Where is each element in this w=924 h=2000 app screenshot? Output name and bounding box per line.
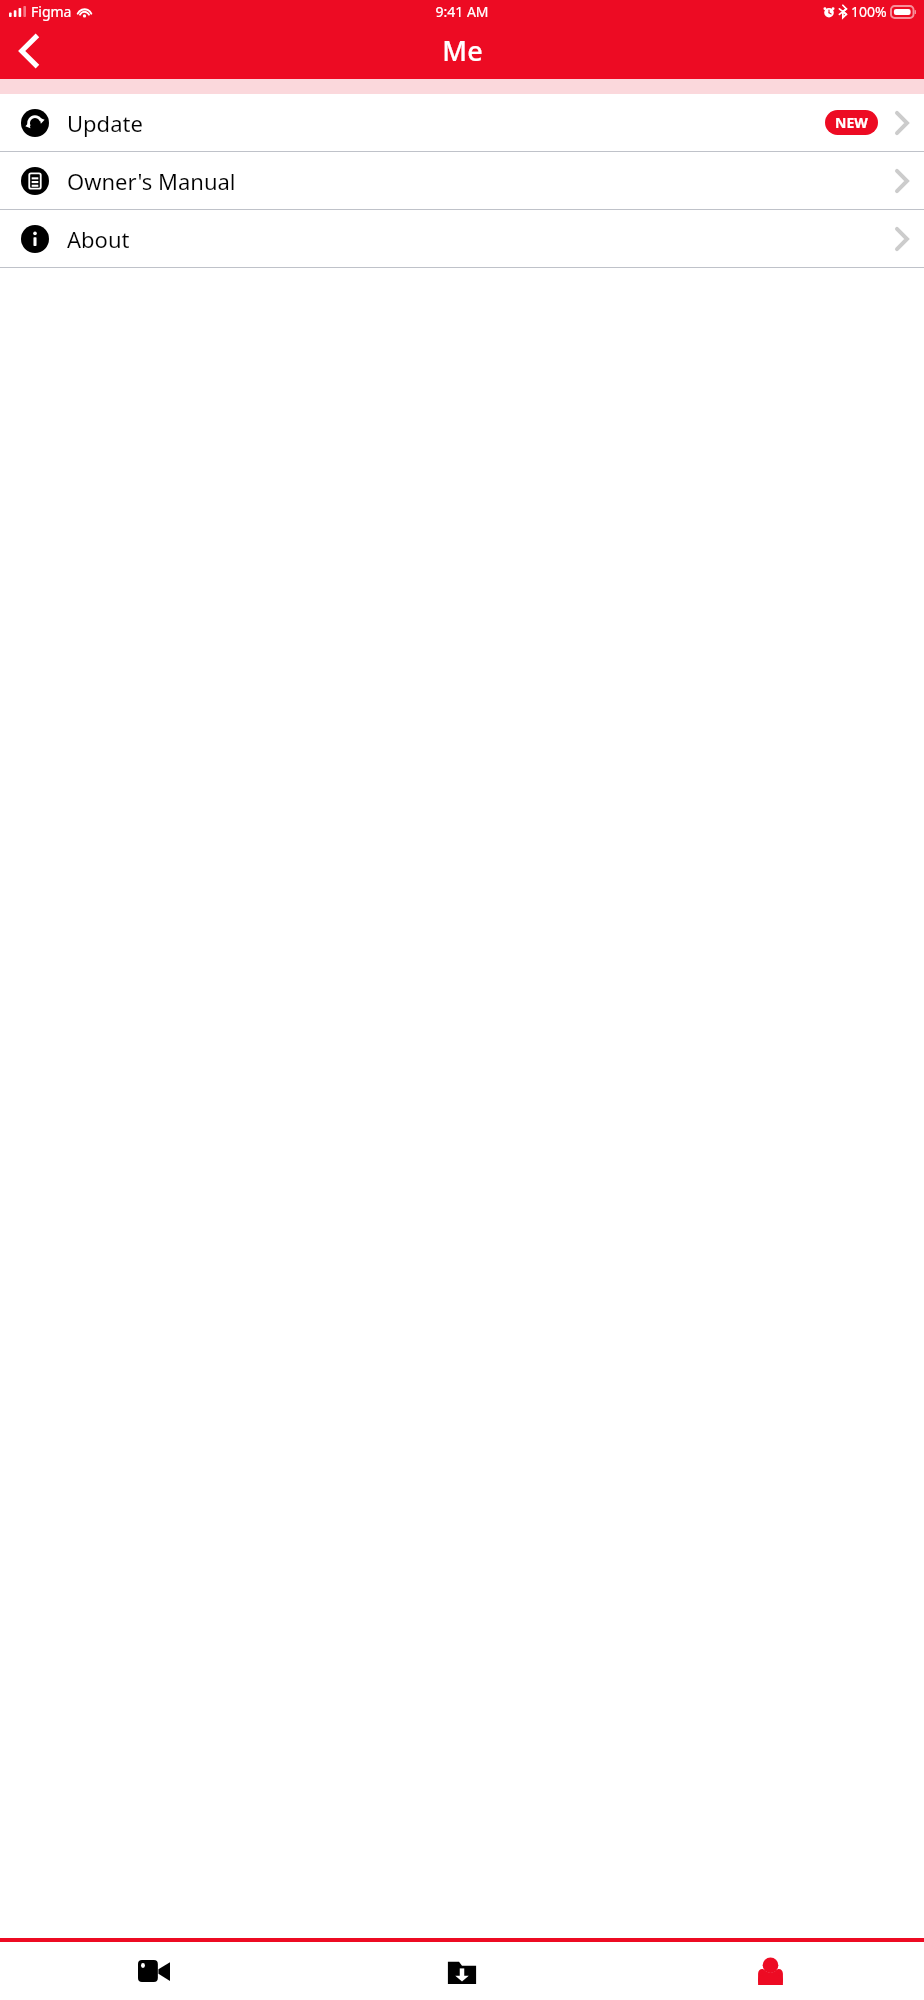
button[interactable]: About bbox=[0, 210, 924, 267]
button[interactable]: Back bbox=[0, 23, 56, 79]
staticText: 9:41 AM bbox=[435, 2, 489, 21]
staticText: Owner's Manual bbox=[67, 166, 895, 196]
button[interactable]: Owner's Manual bbox=[0, 152, 924, 209]
staticText: Figma bbox=[31, 2, 72, 21]
staticText: NEW bbox=[835, 113, 868, 132]
staticText: Update bbox=[67, 108, 825, 138]
staticText: Me bbox=[442, 32, 483, 69]
button[interactable]: Update bbox=[0, 94, 924, 151]
staticText: About bbox=[67, 224, 895, 254]
button[interactable]: Downloads bbox=[308, 1942, 616, 2000]
staticText: 100% bbox=[851, 2, 887, 21]
button[interactable]: Me bbox=[616, 1942, 924, 2000]
button[interactable]: Record bbox=[0, 1942, 308, 2000]
